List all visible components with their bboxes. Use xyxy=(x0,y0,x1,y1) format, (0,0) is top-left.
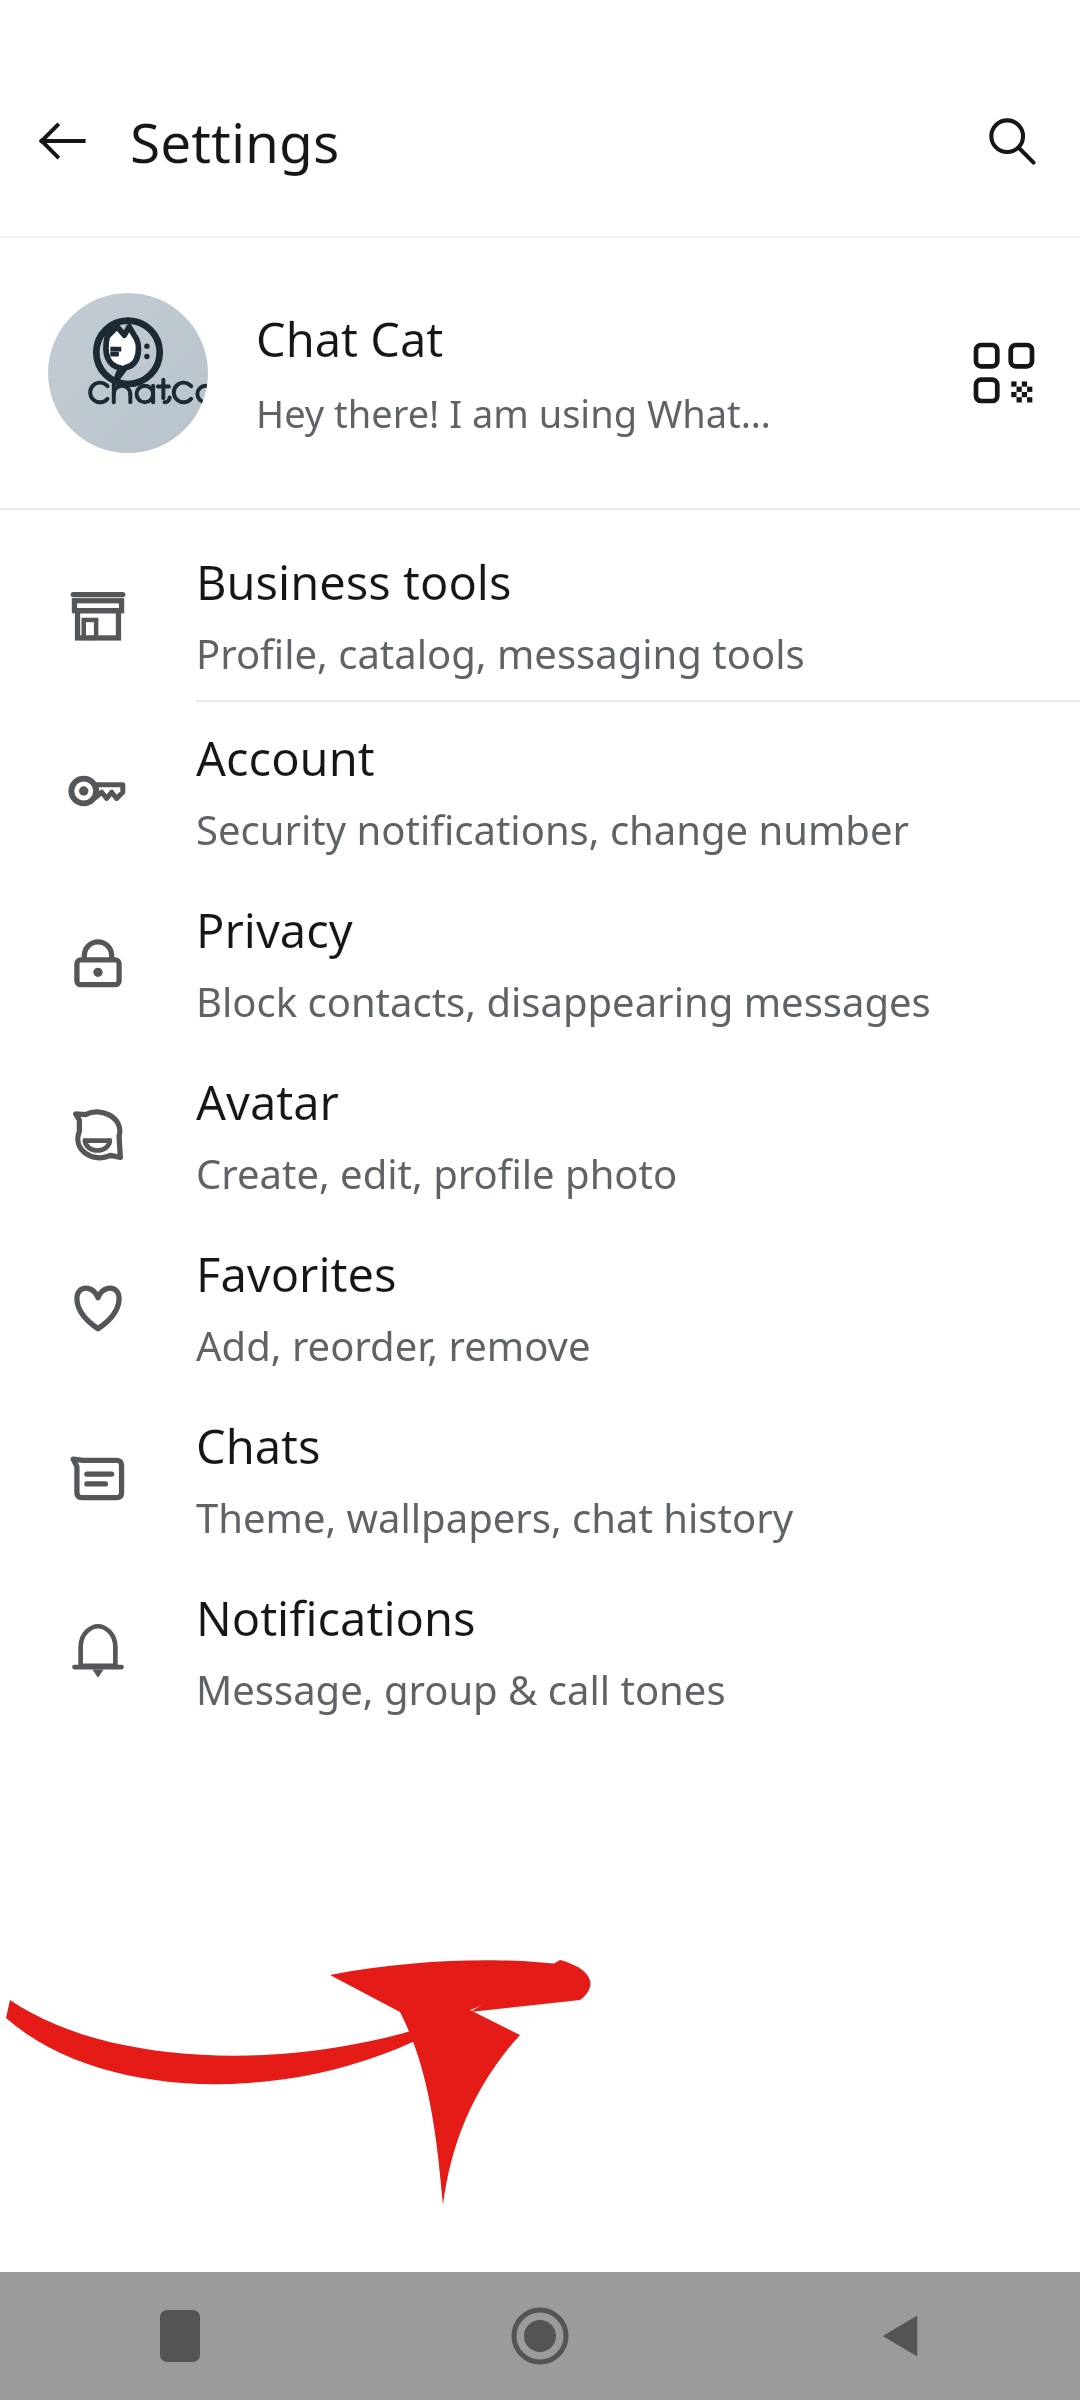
button[interactable]: Business tools xyxy=(0,528,1080,700)
staticText: Chat Cat xyxy=(256,307,444,371)
staticText: Business tools xyxy=(196,550,512,614)
staticText: Privacy xyxy=(196,898,353,962)
staticText: Message, group & call tones xyxy=(196,1662,726,1716)
staticText: Profile, catalog, messaging tools xyxy=(196,626,805,680)
button[interactable]: Favorites xyxy=(0,1218,1080,1390)
button[interactable]: Search xyxy=(970,99,1054,183)
staticText: Settings xyxy=(130,104,340,179)
button[interactable]: Back xyxy=(720,2272,1080,2400)
staticText: Security notifications, change number xyxy=(196,802,910,856)
staticText: Block contacts, disappearing messages xyxy=(196,974,931,1028)
button[interactable]: QR code xyxy=(956,325,1052,421)
button[interactable]: Privacy xyxy=(0,874,1080,1046)
staticText: Favorites xyxy=(196,1242,397,1306)
staticText: Theme, wallpapers, chat history xyxy=(196,1490,794,1544)
staticText: Chats xyxy=(196,1414,321,1478)
button[interactable]: Notifications xyxy=(0,1562,1080,1734)
button[interactable]: Avatar xyxy=(0,1046,1080,1218)
button[interactable]: Back xyxy=(22,101,102,181)
staticText: Hey there! I am using What… xyxy=(256,387,771,439)
staticText: Add, reorder, remove xyxy=(196,1318,591,1372)
button[interactable]: Chats xyxy=(0,1390,1080,1562)
button[interactable]: Recents xyxy=(0,2272,360,2400)
staticText: Create, edit, profile photo xyxy=(196,1146,678,1200)
staticText: Account xyxy=(196,726,375,790)
staticText: Avatar xyxy=(196,1070,340,1134)
button[interactable]: Chat Cat xyxy=(0,238,1080,508)
button[interactable]: Home xyxy=(360,2272,720,2400)
button[interactable]: Account xyxy=(0,702,1080,874)
staticText: Notifications xyxy=(196,1586,476,1650)
